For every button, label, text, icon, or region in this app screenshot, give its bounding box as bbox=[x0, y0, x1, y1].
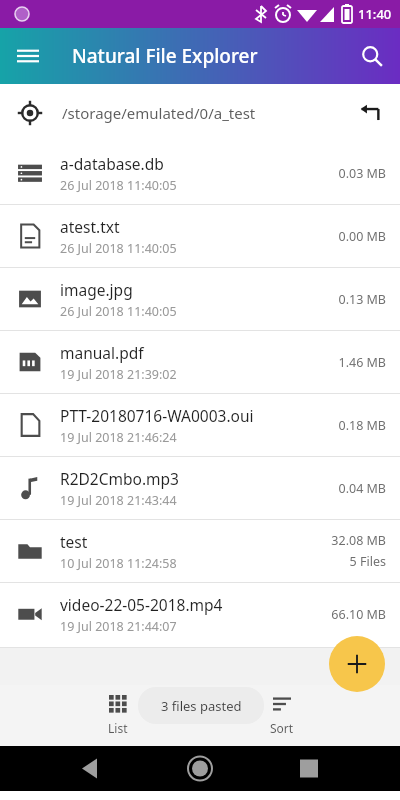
staticText: 19 Jul 2018 21:43:44 bbox=[60, 492, 177, 509]
staticText: 0.00 MB bbox=[338, 228, 386, 245]
staticText: 0.13 MB bbox=[338, 291, 386, 308]
staticText: 3 files pasted bbox=[161, 697, 242, 715]
staticText: 0.04 MB bbox=[338, 480, 386, 497]
staticText: 5 Files bbox=[349, 553, 386, 570]
staticText: 26 Jul 2018 11:40:05 bbox=[60, 240, 177, 257]
staticText: 0.03 MB bbox=[338, 165, 386, 182]
staticText: R2D2Cmbo.mp3 bbox=[60, 468, 179, 489]
button[interactable]: R2D2Cmbo.mp3 bbox=[0, 457, 400, 519]
staticText: 19 Jul 2018 21:46:24 bbox=[60, 429, 177, 446]
staticText: List bbox=[108, 720, 128, 736]
button[interactable]: Add bbox=[329, 636, 385, 692]
button[interactable]: Sort bbox=[237, 695, 327, 736]
button[interactable]: List bbox=[73, 695, 163, 736]
button[interactable]: image.jpg bbox=[0, 268, 400, 330]
staticText: 32.08 MB bbox=[331, 532, 386, 549]
staticText: 1.46 MB bbox=[338, 354, 386, 371]
button[interactable]: a-database.db bbox=[0, 142, 400, 204]
button[interactable]: PTT-20180716-WA0003.oui bbox=[0, 394, 400, 456]
staticText: /storage/emulated/0/a_test bbox=[62, 103, 256, 123]
staticText: 66.10 MB bbox=[331, 606, 386, 623]
staticText: a-database.db bbox=[60, 153, 164, 174]
button[interactable]: test bbox=[0, 520, 400, 582]
staticText: 10 Jul 2018 11:24:58 bbox=[60, 555, 177, 572]
button[interactable]: Current location bbox=[8, 91, 52, 135]
button[interactable]: video-22-05-2018.mp4 bbox=[0, 583, 400, 645]
staticText: 26 Jul 2018 11:40:05 bbox=[60, 177, 177, 194]
staticText: video-22-05-2018.mp4 bbox=[60, 594, 223, 615]
staticText: manual.pdf bbox=[60, 342, 144, 363]
staticText: 0.18 MB bbox=[338, 417, 386, 434]
button[interactable]: manual.pdf bbox=[0, 331, 400, 393]
staticText: Sort bbox=[270, 720, 294, 736]
staticText: 19 Jul 2018 21:39:02 bbox=[60, 366, 177, 383]
button[interactable]: Open navigation menu bbox=[8, 36, 48, 76]
staticText: image.jpg bbox=[60, 279, 133, 300]
staticText: 11:40 bbox=[358, 5, 392, 23]
staticText: Natural File Explorer bbox=[72, 43, 258, 69]
button[interactable]: Search bbox=[352, 36, 392, 76]
staticText: PTT-20180716-WA0003.oui bbox=[60, 405, 254, 426]
staticText: 19 Jul 2018 21:44:07 bbox=[60, 618, 177, 635]
staticText: 26 Jul 2018 11:40:05 bbox=[60, 303, 177, 320]
staticText: atest.txt bbox=[60, 216, 120, 237]
button[interactable]: atest.txt bbox=[0, 205, 400, 267]
button[interactable]: Go up one folder bbox=[350, 93, 390, 133]
staticText: test bbox=[60, 531, 88, 552]
